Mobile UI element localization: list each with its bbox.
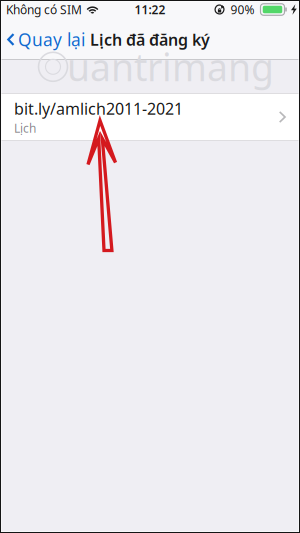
staticText: Lịch [14, 120, 36, 136]
staticText: bit.ly/amlich2011-2021 [14, 98, 183, 119]
staticText: Quay lại [18, 28, 85, 51]
staticText: Không có SIM [6, 1, 82, 17]
staticText: 11:22 [134, 1, 165, 17]
staticText: Lịch đã đăng ký [90, 29, 210, 50]
button[interactable]: bit.ly/amlich2011-2021 [0, 93, 300, 141]
button[interactable]: Quay lại [0, 21, 91, 58]
staticText: uantrimang [67, 42, 274, 92]
staticText: 90% [230, 1, 254, 17]
